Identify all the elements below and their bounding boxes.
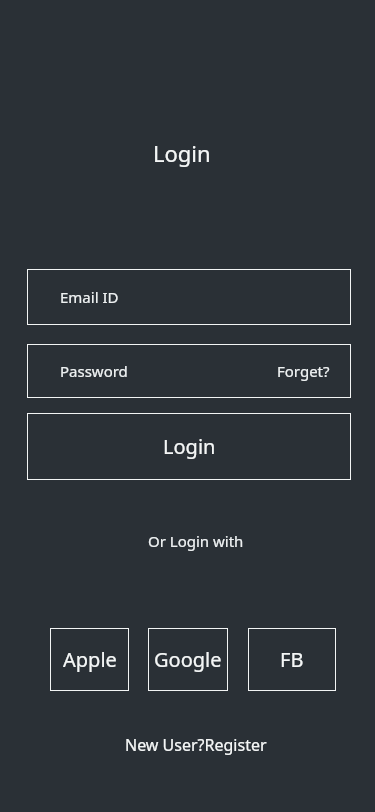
button[interactable]: Google [148, 628, 228, 691]
button[interactable]: Password [27, 344, 351, 398]
staticText: Login [153, 138, 211, 168]
staticText: FB [280, 646, 304, 673]
button[interactable]: Apple [50, 628, 129, 691]
staticText: Google [154, 646, 222, 673]
staticText: Login [163, 433, 216, 460]
button[interactable]: FB [248, 628, 336, 691]
staticText: Or Login with [148, 531, 244, 551]
staticText: Password [60, 361, 128, 381]
button[interactable]: Email ID [27, 269, 351, 325]
button[interactable]: Forget? [277, 361, 330, 381]
staticText: New User?Register [125, 734, 267, 756]
staticText: Apple [63, 646, 117, 673]
staticText: Email ID [60, 287, 119, 307]
button[interactable]: Login [27, 413, 351, 480]
